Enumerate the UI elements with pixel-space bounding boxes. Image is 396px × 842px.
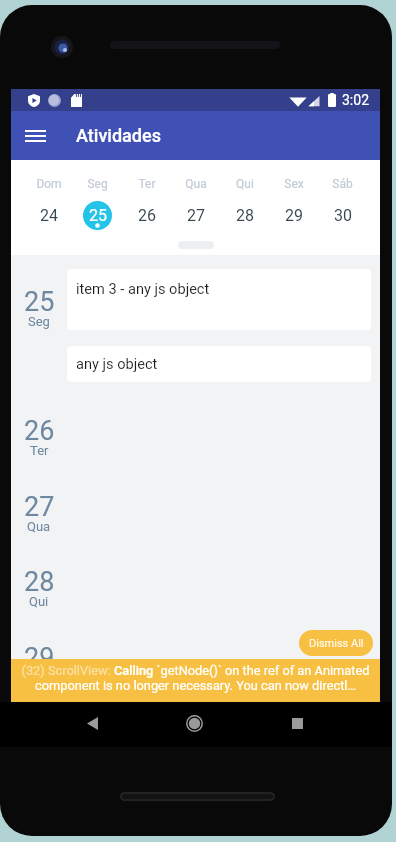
staticText: 29	[285, 206, 303, 225]
button[interactable]: Dismiss All	[299, 630, 373, 656]
button[interactable]: 30	[318, 200, 367, 230]
staticText: Ter	[138, 177, 156, 191]
staticText: 25	[89, 206, 107, 225]
staticText: Sex	[28, 670, 50, 685]
button[interactable]: 24	[24, 200, 73, 230]
staticText: Sáb	[332, 177, 353, 191]
staticText: Atividades	[76, 125, 161, 146]
staticText: 24	[40, 206, 58, 225]
button[interactable]: any js object	[67, 346, 371, 382]
staticText: 25	[24, 286, 55, 318]
button[interactable]: Back	[78, 709, 106, 737]
staticText: (32) ScrollView: Calling `getNode()` on …	[15, 663, 376, 678]
staticText: 26	[24, 415, 55, 447]
staticText: 29	[24, 642, 55, 674]
button[interactable]: 27	[171, 200, 220, 230]
staticText: item 3 - any js object	[76, 280, 210, 297]
staticText: 26	[138, 206, 156, 225]
staticText: Qua	[185, 177, 207, 191]
staticText: 28	[236, 206, 254, 225]
button[interactable]: Home	[180, 709, 208, 737]
button[interactable]: item 3 - any js object	[67, 269, 371, 330]
staticText: Seg	[87, 177, 108, 191]
staticText: any js object	[76, 355, 158, 372]
button[interactable]: 29	[269, 200, 318, 230]
staticText: Qui	[236, 177, 254, 191]
staticText: Dom	[36, 177, 62, 191]
staticText: 28	[24, 566, 55, 598]
staticText: 30	[334, 206, 352, 225]
button[interactable]: 26	[122, 200, 171, 230]
staticText: Qua	[27, 519, 51, 534]
staticText: 27	[24, 491, 55, 523]
button[interactable]: 25	[73, 200, 122, 230]
staticText: component is no longer necessary. You ca…	[15, 678, 376, 693]
staticText: Ter	[30, 443, 49, 458]
staticText: Sex	[284, 177, 304, 191]
staticText: Qui	[29, 594, 49, 609]
button[interactable]: 28	[220, 200, 269, 230]
staticText: 3:02	[342, 92, 369, 108]
staticText: 27	[187, 206, 205, 225]
staticText: Dismiss All	[309, 637, 364, 650]
staticText: Seg	[28, 314, 50, 329]
button[interactable]: Menu	[11, 112, 59, 160]
button[interactable]: Recents	[283, 709, 311, 737]
